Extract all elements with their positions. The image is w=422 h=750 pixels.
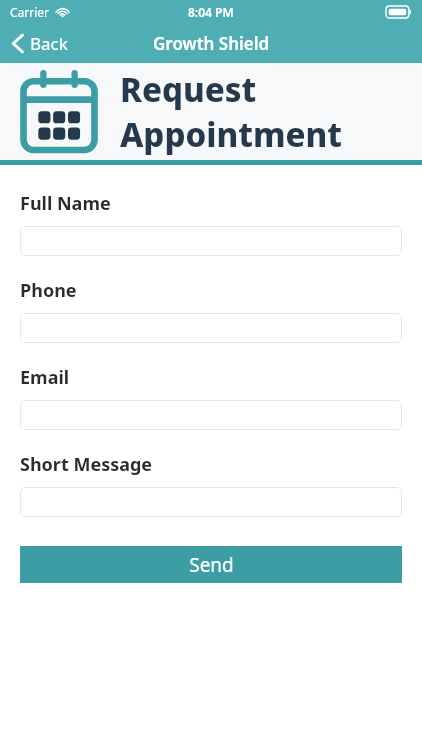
button[interactable] [20,487,402,517]
staticText: Growth Shield [153,32,270,55]
button[interactable] [20,313,402,343]
staticText: 8:04 PM [188,4,234,20]
staticText: Email [20,365,70,390]
button[interactable] [20,400,402,430]
button[interactable] [20,226,402,256]
staticText: Full Name [20,191,111,216]
staticText: Back [30,32,68,55]
button[interactable]: Send [20,546,402,583]
staticText: Short Message [20,452,153,477]
staticText: Phone [20,278,77,303]
button[interactable]: Back [0,26,82,61]
staticText: Carrier [10,4,50,20]
staticText: Appointment [120,112,342,157]
staticText: Send [189,552,234,578]
staticText: Request [120,67,257,112]
